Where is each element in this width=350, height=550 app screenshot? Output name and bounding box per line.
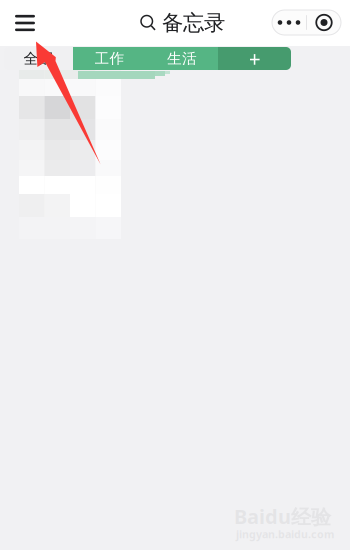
- button[interactable]: 工作: [73, 47, 146, 70]
- button[interactable]: 全部: [4, 47, 73, 70]
- staticText: +: [248, 44, 260, 73]
- button[interactable]: Add category: [218, 47, 291, 70]
- button[interactable]: 生活: [146, 47, 218, 70]
- staticText: 工作: [94, 49, 124, 67]
- staticText: jingyan.baidu.com: [236, 527, 334, 541]
- staticText: 生活: [167, 49, 197, 67]
- button[interactable]: Close mini program: [307, 10, 341, 35]
- staticText: Baidu经验: [234, 503, 331, 530]
- staticText: 全部: [23, 49, 53, 67]
- button[interactable]: Menu: [3, 0, 47, 46]
- button[interactable]: More: [272, 10, 306, 35]
- staticText: 备忘录: [162, 10, 225, 36]
- button[interactable]: 备忘录: [135, 6, 231, 40]
